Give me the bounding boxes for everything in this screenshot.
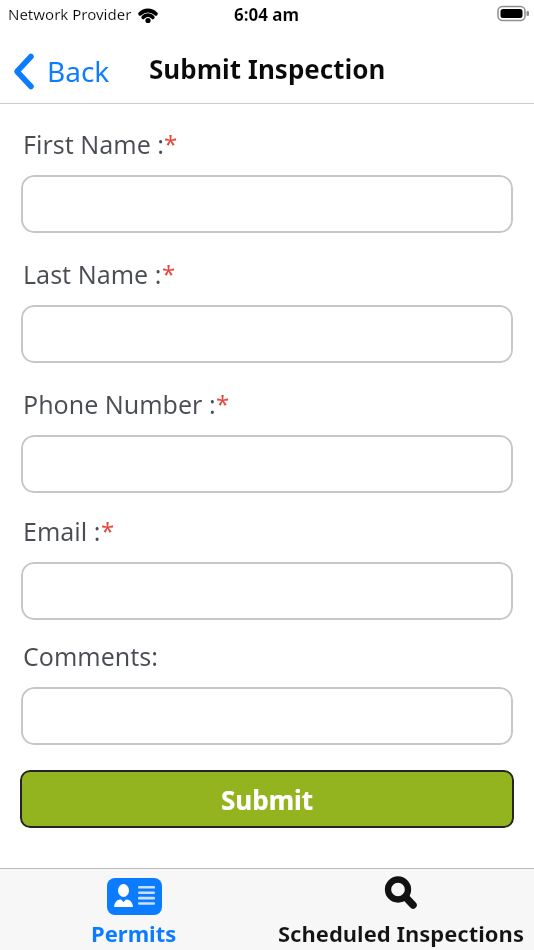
button[interactable] bbox=[21, 687, 513, 745]
staticText: First Name : bbox=[23, 127, 164, 161]
button[interactable] bbox=[21, 305, 513, 363]
button[interactable]: Scheduled Inspections bbox=[267, 869, 534, 950]
staticText: Back bbox=[47, 52, 110, 90]
button[interactable] bbox=[21, 175, 513, 233]
staticText: Scheduled Inspections bbox=[278, 918, 524, 948]
staticText: Submit Inspection bbox=[149, 51, 386, 86]
staticText: 6:04 am bbox=[234, 3, 300, 26]
button[interactable]: Back bbox=[14, 52, 110, 90]
staticText: * bbox=[216, 387, 230, 420]
staticText: Phone Number : bbox=[23, 387, 216, 421]
staticText: Submit bbox=[221, 782, 314, 817]
button[interactable] bbox=[21, 562, 513, 620]
staticText: Network Provider bbox=[8, 4, 132, 24]
staticText: Email : bbox=[23, 514, 101, 548]
staticText: Last Name : bbox=[23, 257, 162, 291]
staticText: Comments: bbox=[23, 639, 158, 673]
button[interactable]: Submit bbox=[20, 770, 514, 828]
button[interactable] bbox=[21, 435, 513, 493]
staticText: * bbox=[101, 514, 115, 547]
staticText: * bbox=[162, 257, 176, 290]
staticText: * bbox=[164, 127, 178, 160]
staticText: Permits bbox=[91, 918, 177, 948]
button[interactable]: Permits bbox=[0, 869, 267, 950]
